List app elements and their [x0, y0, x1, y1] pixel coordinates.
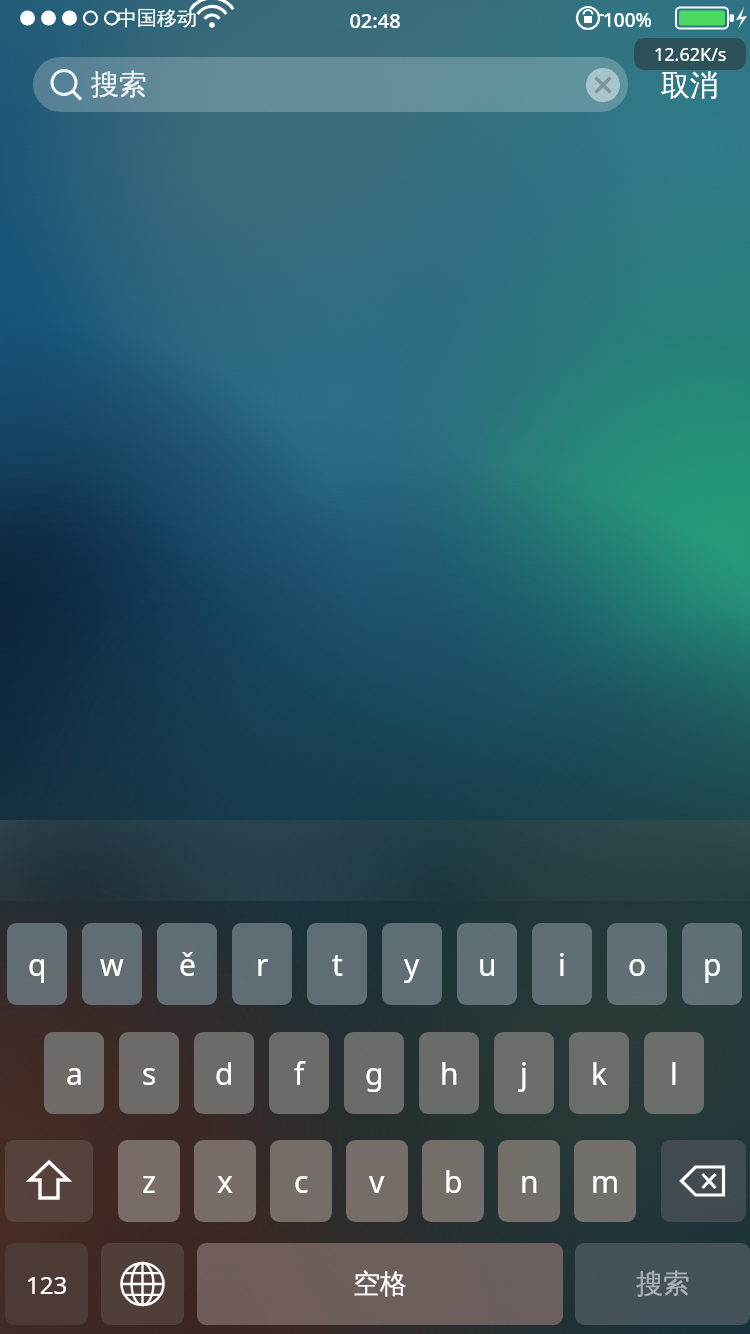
staticText: g: [365, 1053, 384, 1094]
button[interactable]: p: [682, 923, 742, 1005]
button[interactable]: m: [574, 1140, 636, 1222]
button[interactable]: h: [419, 1032, 479, 1114]
button[interactable]: x: [194, 1140, 256, 1222]
staticText: v: [369, 1161, 385, 1202]
button[interactable]: q: [7, 923, 67, 1005]
button[interactable]: 取消: [640, 60, 740, 110]
button[interactable]: j: [494, 1032, 554, 1114]
button[interactable]: 123: [5, 1243, 88, 1325]
button[interactable]: n: [498, 1140, 560, 1222]
button[interactable]: f: [269, 1032, 329, 1114]
button[interactable]: y: [382, 923, 442, 1005]
button[interactable]: a: [44, 1032, 104, 1114]
button[interactable]: r: [232, 923, 292, 1005]
staticText: t: [332, 944, 343, 985]
button[interactable]: s: [119, 1032, 179, 1114]
staticText: x: [217, 1161, 233, 1202]
button[interactable]: ě: [157, 923, 217, 1005]
staticText: k: [591, 1053, 608, 1094]
staticText: o: [628, 944, 647, 985]
button[interactable]: v: [346, 1140, 408, 1222]
staticText: d: [215, 1053, 234, 1094]
staticText: 123: [26, 1268, 68, 1301]
staticText: 100%: [603, 7, 652, 33]
staticText: y: [404, 944, 420, 985]
button[interactable]: Clear text: [581, 63, 625, 107]
button[interactable]: o: [607, 923, 667, 1005]
button[interactable]: Shift: [5, 1140, 93, 1222]
staticText: u: [478, 944, 497, 985]
staticText: z: [142, 1161, 157, 1202]
staticText: l: [670, 1053, 678, 1094]
button[interactable]: g: [344, 1032, 404, 1114]
staticText: b: [444, 1161, 463, 1202]
button[interactable]: l: [644, 1032, 704, 1114]
staticText: f: [294, 1053, 305, 1094]
button[interactable]: d: [194, 1032, 254, 1114]
button[interactable]: u: [457, 923, 517, 1005]
staticText: 中国移动: [117, 6, 197, 31]
button[interactable]: c: [270, 1140, 332, 1222]
staticText: 02:48: [0, 7, 750, 34]
staticText: n: [520, 1161, 539, 1202]
button[interactable]: 搜索: [33, 57, 628, 112]
staticText: w: [100, 944, 124, 985]
button[interactable]: i: [532, 923, 592, 1005]
button[interactable]: Change keyboard: [101, 1243, 184, 1325]
staticText: p: [703, 944, 722, 985]
staticText: a: [66, 1053, 83, 1094]
staticText: 搜索: [91, 67, 147, 102]
staticText: q: [28, 944, 47, 985]
button[interactable]: w: [82, 923, 142, 1005]
staticText: i: [558, 944, 566, 985]
button[interactable]: k: [569, 1032, 629, 1114]
staticText: 空格: [353, 1267, 407, 1301]
staticText: 取消: [661, 67, 719, 104]
staticText: s: [142, 1053, 157, 1094]
staticText: h: [440, 1053, 459, 1094]
button[interactable]: 搜索: [575, 1243, 750, 1325]
button[interactable]: b: [422, 1140, 484, 1222]
staticText: 12.62K/s: [654, 42, 727, 67]
staticText: m: [591, 1161, 620, 1202]
staticText: c: [294, 1161, 309, 1202]
staticText: ě: [179, 944, 196, 985]
button[interactable]: z: [118, 1140, 180, 1222]
staticText: r: [256, 944, 269, 985]
staticText: j: [520, 1053, 528, 1094]
button[interactable]: Backspace: [661, 1140, 746, 1222]
staticText: 搜索: [636, 1267, 690, 1301]
button[interactable]: t: [307, 923, 367, 1005]
button[interactable]: 空格: [197, 1243, 563, 1325]
